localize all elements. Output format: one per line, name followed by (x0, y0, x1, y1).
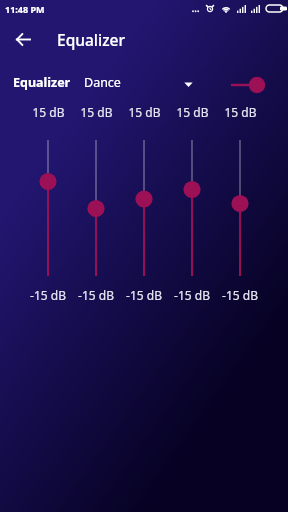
staticText: -15 dB (30, 287, 66, 303)
staticText: -15 dB (222, 287, 258, 303)
staticText: 15 dB (128, 104, 161, 120)
staticText: 11:48 PM (5, 3, 45, 15)
staticText: 15 dB (224, 104, 257, 120)
button[interactable]: Band 5 level (216, 133, 264, 278)
staticText: -15 dB (78, 287, 114, 303)
staticText: Dance (84, 74, 121, 91)
button[interactable]: Back (7, 23, 39, 55)
staticText: 15 dB (80, 104, 113, 120)
button[interactable]: Band 1 level (24, 133, 72, 278)
staticText: -15 dB (174, 287, 210, 303)
button[interactable]: Dance (80, 69, 198, 95)
button[interactable]: Band 4 level (168, 133, 216, 278)
staticText: 15 dB (32, 104, 65, 120)
button[interactable]: Enable equalizer (222, 72, 268, 98)
button[interactable]: Band 2 level (72, 133, 120, 278)
button[interactable]: Band 3 level (120, 133, 168, 278)
staticText: 15 dB (176, 104, 209, 120)
staticText: -15 dB (126, 287, 162, 303)
staticText: Equalizer (13, 74, 71, 91)
staticText: Equalizer (57, 29, 126, 50)
